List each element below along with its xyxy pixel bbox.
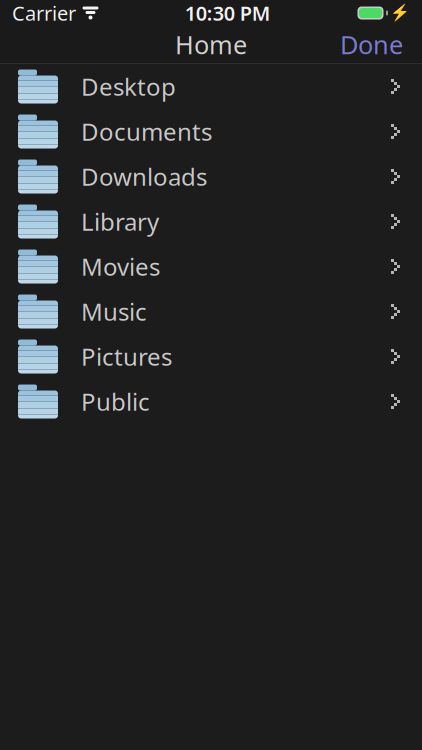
button[interactable]: Downloads [0,154,422,199]
staticText: Done [340,28,403,61]
staticText: Music [81,296,147,327]
staticText: 10:30 PM [185,0,271,26]
staticText: Public [81,386,150,417]
button[interactable]: Done [326,21,417,68]
staticText: Home [175,28,247,61]
button[interactable]: Library [0,199,422,244]
staticText: Movies [81,251,160,282]
button[interactable]: Pictures [0,334,422,379]
staticText: ⚡ [390,4,410,22]
button[interactable]: Music [0,289,422,334]
staticText: Carrier [12,0,76,26]
staticText: Documents [81,116,212,147]
staticText: Desktop [81,71,176,102]
staticText: Pictures [81,341,172,372]
staticText: Library [81,206,159,237]
button[interactable]: Documents [0,109,422,154]
button[interactable]: Movies [0,244,422,289]
staticText: Downloads [81,161,207,192]
button[interactable]: Public [0,379,422,424]
button[interactable]: Desktop [0,64,422,109]
